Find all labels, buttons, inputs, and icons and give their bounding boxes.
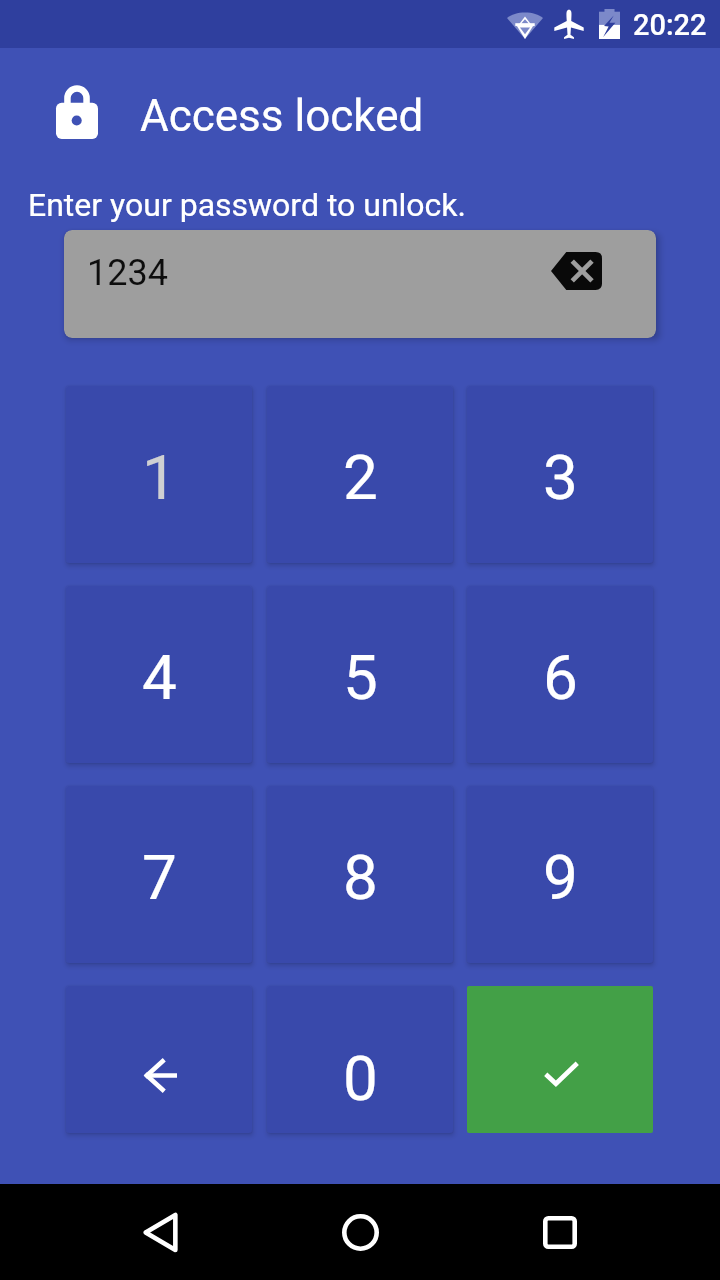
- button[interactable]: 9: [467, 786, 653, 963]
- staticText: 20:22: [633, 8, 707, 42]
- staticText: 3: [543, 441, 578, 514]
- button[interactable]: Backspace: [551, 252, 602, 290]
- button[interactable]: Home: [300, 1184, 420, 1280]
- button[interactable]: Recent apps: [500, 1184, 620, 1280]
- button[interactable]: 1: [66, 386, 252, 563]
- button[interactable]: 1234: [64, 230, 656, 338]
- staticText: 1234: [87, 252, 168, 294]
- button[interactable]: Confirm: [467, 986, 653, 1133]
- staticText: 9: [543, 841, 578, 914]
- button[interactable]: 4: [66, 586, 252, 763]
- staticText: 5: [343, 641, 378, 714]
- staticText: 1: [142, 441, 177, 514]
- button[interactable]: 8: [267, 786, 453, 963]
- button[interactable]: 0: [267, 986, 453, 1133]
- button[interactable]: Delete: [66, 986, 252, 1133]
- staticText: 8: [343, 841, 378, 914]
- staticText: 0: [343, 1042, 378, 1115]
- button[interactable]: 2: [267, 386, 453, 563]
- button[interactable]: 6: [467, 586, 653, 763]
- staticText: 7: [142, 841, 177, 914]
- staticText: 6: [543, 641, 578, 714]
- button[interactable]: 3: [467, 386, 653, 563]
- staticText: 4: [142, 641, 177, 714]
- button[interactable]: 5: [267, 586, 453, 763]
- staticText: Access locked: [140, 90, 424, 142]
- button[interactable]: 7: [66, 786, 252, 963]
- staticText: 2: [343, 441, 378, 514]
- staticText: Enter your password to unlock.: [28, 186, 466, 224]
- button[interactable]: Back: [100, 1184, 220, 1280]
